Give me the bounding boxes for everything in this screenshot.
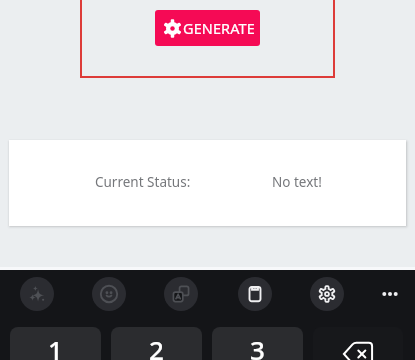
button[interactable]: 2	[111, 327, 202, 360]
button[interactable]: Current Status:	[9, 140, 406, 226]
button[interactable]: More options	[373, 277, 407, 311]
button[interactable]: GENERATE	[155, 10, 260, 46]
button[interactable]: 1	[10, 327, 101, 360]
button[interactable]: Assistant	[20, 277, 54, 311]
button[interactable]: 3	[212, 327, 303, 360]
button[interactable]: Emoji	[92, 277, 126, 311]
button[interactable]: Settings	[310, 277, 344, 311]
staticText: No text!	[272, 173, 322, 191]
staticText: 2	[149, 332, 164, 360]
button[interactable]: Clipboard	[238, 277, 272, 311]
button[interactable]: Translate	[164, 277, 198, 311]
button[interactable]: Backspace	[313, 327, 403, 360]
staticText: GENERATE	[183, 18, 255, 38]
staticText: Current Status:	[95, 173, 191, 191]
staticText: 1	[48, 332, 63, 360]
staticText: 3	[250, 332, 265, 360]
